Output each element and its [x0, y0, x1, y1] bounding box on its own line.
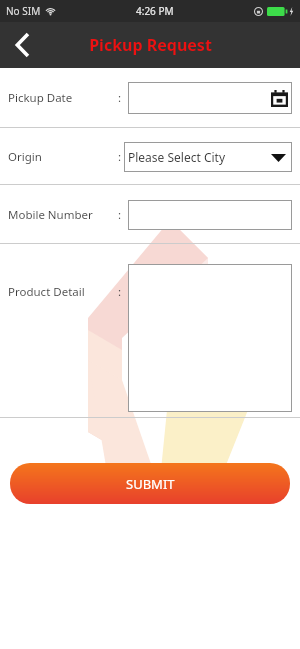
staticText: Origin [8, 149, 118, 165]
button[interactable]: Please Select City [124, 142, 292, 172]
staticText: : [118, 207, 122, 223]
staticText: Pickup Request [89, 34, 212, 56]
staticText: Mobile Number [8, 207, 118, 223]
button[interactable]: Pick date [128, 82, 292, 114]
staticText: Product Detail [8, 284, 118, 300]
other: Pick date [271, 90, 288, 107]
staticText: No SIM [6, 4, 41, 18]
button[interactable] [128, 200, 292, 230]
button[interactable] [128, 264, 292, 412]
staticText: 4:26 PM [136, 4, 174, 18]
staticText: Pickup Date [8, 90, 118, 106]
button[interactable]: Back [0, 23, 44, 67]
staticText: SUBMIT [126, 475, 175, 493]
button[interactable]: SUBMIT [10, 463, 290, 504]
staticText: : [118, 284, 122, 300]
staticText: : [118, 149, 122, 165]
staticText: Please Select City [128, 149, 226, 165]
staticText: : [118, 90, 122, 106]
